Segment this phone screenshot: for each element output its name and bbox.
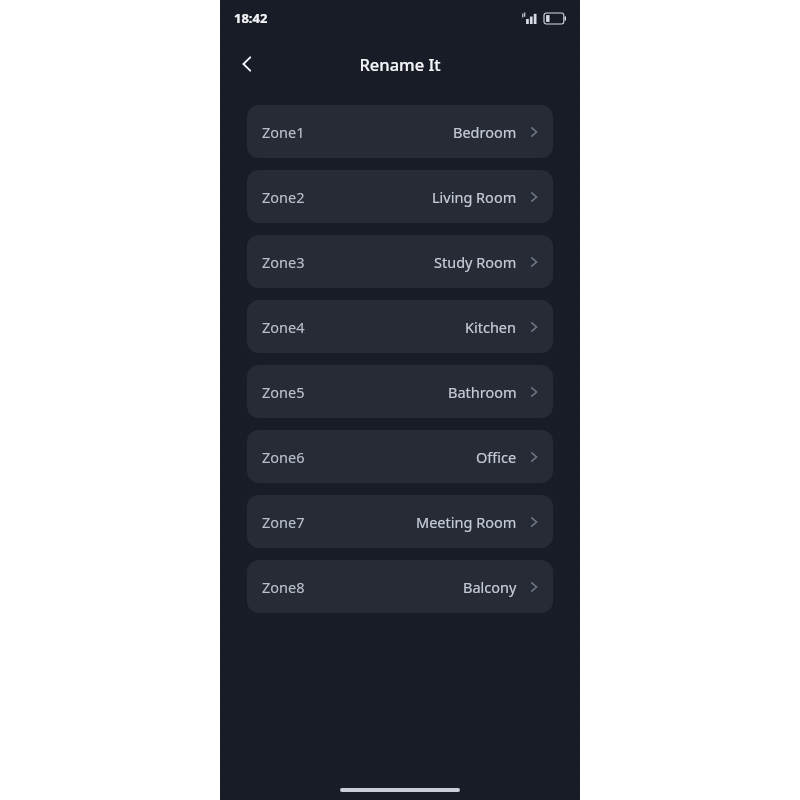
staticText: Kitchen <box>465 317 517 337</box>
staticText: Zone3 <box>262 252 305 272</box>
staticText: Zone2 <box>262 187 305 207</box>
staticText: Zone5 <box>262 382 305 402</box>
button[interactable]: Zone6 <box>247 430 553 483</box>
staticText: Zone4 <box>262 317 305 337</box>
staticText: Bathroom <box>448 382 517 402</box>
staticText: Zone6 <box>262 447 305 467</box>
button[interactable]: Zone8 <box>247 560 553 613</box>
button[interactable]: Back <box>226 43 268 85</box>
staticText: Bedroom <box>453 122 517 142</box>
staticText: Study Room <box>434 252 517 272</box>
button[interactable]: Zone4 <box>247 300 553 353</box>
staticText: Living Room <box>432 187 517 207</box>
button[interactable]: Zone3 <box>247 235 553 288</box>
button[interactable]: Zone1 <box>247 105 553 158</box>
staticText: Office <box>476 447 517 467</box>
button[interactable]: Zone7 <box>247 495 553 548</box>
staticText: 18:42 <box>234 9 268 27</box>
staticText: Meeting Room <box>416 512 517 532</box>
button[interactable]: Zone5 <box>247 365 553 418</box>
staticText: Zone1 <box>262 122 305 142</box>
staticText: Zone7 <box>262 512 305 532</box>
staticText: Rename It <box>359 53 441 75</box>
button[interactable]: Zone2 <box>247 170 553 223</box>
staticText: Balcony <box>463 577 517 597</box>
staticText: Zone8 <box>262 577 305 597</box>
